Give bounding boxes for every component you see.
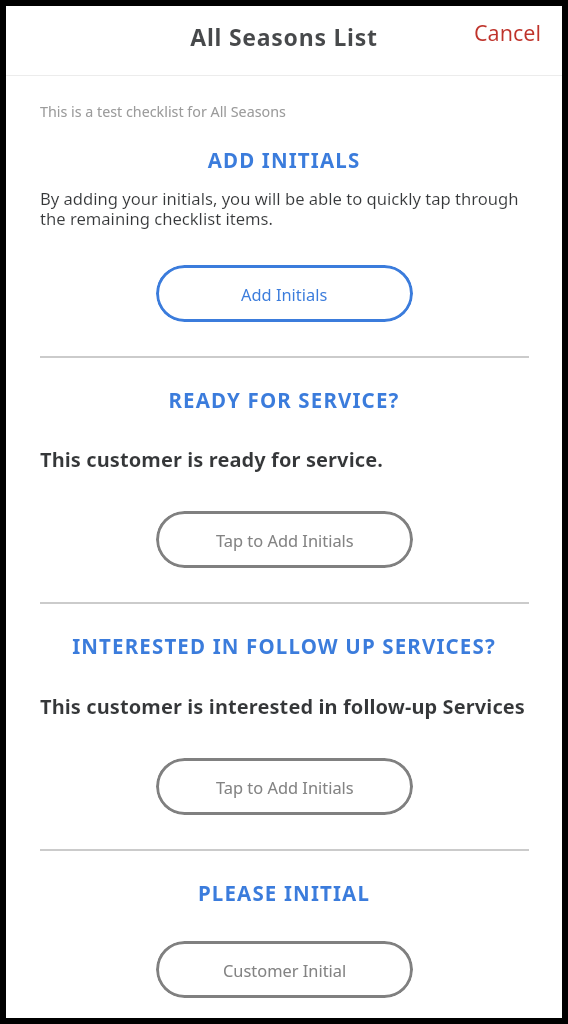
button[interactable]: Customer Initial bbox=[156, 941, 413, 998]
staticText: Tap to Add Initials bbox=[216, 776, 354, 798]
staticText: Add Initials bbox=[241, 283, 328, 305]
staticText: Cancel bbox=[474, 18, 541, 47]
staticText: PLEASE INITIAL bbox=[6, 879, 562, 907]
staticText: All Seasons List bbox=[6, 21, 562, 52]
button[interactable]: Add Initials bbox=[156, 265, 413, 322]
staticText: This customer is interested in follow-up… bbox=[40, 693, 525, 720]
staticText: ADD INITIALS bbox=[6, 146, 562, 174]
staticText: Tap to Add Initials bbox=[216, 529, 354, 551]
staticText: READY FOR SERVICE? bbox=[6, 386, 562, 414]
staticText: By adding your initials, you will be abl… bbox=[40, 187, 529, 230]
staticText: Customer Initial bbox=[223, 959, 347, 981]
button[interactable]: Cancel bbox=[460, 10, 555, 55]
staticText: This is a test checklist for All Seasons bbox=[40, 102, 286, 121]
staticText: INTERESTED IN FOLLOW UP SERVICES? bbox=[6, 632, 562, 660]
staticText: This customer is ready for service. bbox=[40, 446, 383, 473]
button[interactable]: Tap to Add Initials bbox=[156, 511, 413, 568]
button[interactable]: Tap to Add Initials bbox=[156, 758, 413, 815]
